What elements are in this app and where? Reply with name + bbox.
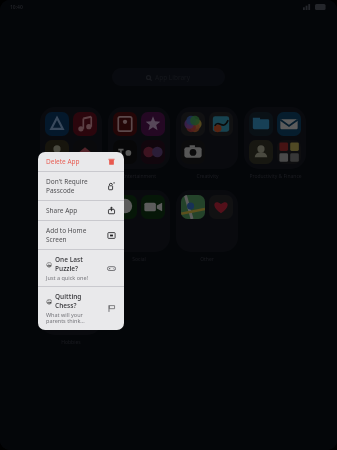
- staticText: Don't Require Passcode: [46, 177, 103, 195]
- staticText: Suggestions: [57, 173, 86, 180]
- staticText: Add to Home Screen: [46, 226, 103, 244]
- staticText: 😁: [46, 298, 53, 305]
- staticText: 10:40: [10, 4, 23, 11]
- staticText: Productivity & Finance: [249, 173, 302, 180]
- button[interactable]: 😀: [38, 250, 124, 287]
- staticText: Entertainment: [122, 173, 156, 180]
- button[interactable]: [40, 190, 102, 252]
- button[interactable]: 😁: [38, 287, 124, 330]
- button[interactable]: [40, 273, 102, 335]
- staticText: Social: [132, 256, 146, 263]
- button[interactable]: [108, 107, 170, 169]
- staticText: Delete App: [46, 157, 80, 166]
- staticText: Just a quick one!: [46, 274, 88, 281]
- button[interactable]: [176, 190, 238, 252]
- staticText: Share App: [46, 206, 78, 215]
- button[interactable]: [42, 265, 70, 293]
- button[interactable]: [40, 107, 102, 169]
- button[interactable]: [176, 107, 238, 169]
- staticText: One Last Puzzle?: [55, 255, 103, 273]
- button[interactable]: Delete App: [38, 152, 124, 172]
- staticText: 😀: [46, 261, 53, 268]
- button[interactable]: Don't Require Passcode: [38, 172, 124, 201]
- staticText: Creativity: [196, 173, 219, 180]
- button[interactable]: [244, 107, 306, 169]
- staticText: Quitting Chess?: [55, 292, 103, 310]
- staticText: Hobbies: [61, 339, 81, 346]
- staticText: What will your parents think...: [46, 311, 85, 325]
- button[interactable]: Share App: [38, 201, 124, 221]
- staticText: Utilities: [62, 256, 80, 263]
- button[interactable]: [108, 190, 170, 252]
- staticText: Other: [200, 256, 214, 263]
- button[interactable]: Add to Home Screen: [38, 221, 124, 250]
